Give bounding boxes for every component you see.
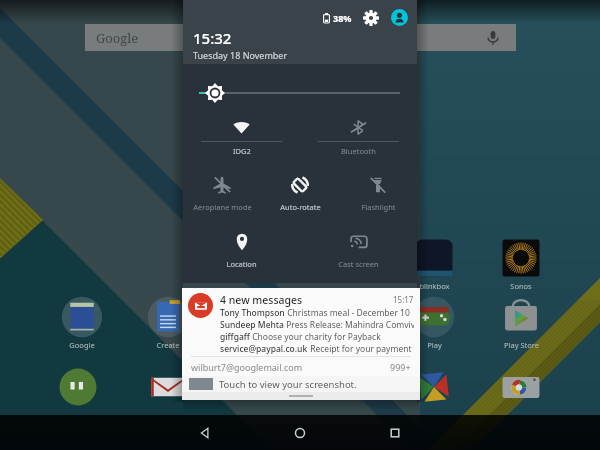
button[interactable] — [48, 366, 108, 408]
staticText: Press Release: Mahindra Comviva … — [284, 319, 414, 331]
button[interactable]: Google — [85, 24, 516, 51]
button[interactable]: Flashlight — [339, 168, 417, 225]
button[interactable]: Google — [52, 296, 112, 350]
staticText: Touch to view your screenshot. — [219, 378, 357, 391]
button[interactable]: Auto-rotate — [261, 168, 339, 225]
staticText: Play Store — [504, 340, 539, 350]
staticText: Christmas meal - December 10 — [285, 307, 410, 319]
staticText: Bluetooth — [341, 146, 376, 156]
button[interactable]: blinkbox — [404, 237, 464, 291]
button[interactable]: Home — [284, 417, 316, 449]
staticText: Receipt for your payment to j… — [308, 343, 414, 355]
staticText: 4 new messages — [220, 293, 303, 307]
staticText: Auto-rotate — [280, 202, 321, 212]
staticText: wilburt7@googlemail.com — [191, 361, 303, 373]
staticText: 15:17 — [393, 294, 414, 305]
staticText: Google — [69, 340, 95, 350]
staticText: Sonos — [510, 281, 532, 291]
staticText: Tony Thompson — [220, 307, 285, 319]
button[interactable]: Aeroplane mode — [183, 168, 261, 225]
button[interactable]: Cast screen — [300, 225, 417, 282]
button[interactable]: Sonos — [491, 237, 551, 291]
staticText: Cast screen — [338, 259, 379, 269]
button[interactable]: 4 new messages — [182, 288, 420, 376]
staticText: giffgaff — [220, 331, 250, 343]
staticText: 38% — [333, 12, 352, 24]
staticText: Play — [427, 340, 442, 350]
button[interactable]: Bluetooth — [300, 111, 417, 168]
staticText: blinkbox — [419, 281, 450, 291]
button[interactable]: Create — [138, 296, 198, 350]
button[interactable]: Touch to view your screenshot. — [182, 376, 420, 392]
button[interactable] — [138, 366, 198, 408]
button[interactable]: Play Store — [491, 296, 551, 350]
button[interactable]: Back — [189, 417, 221, 449]
button[interactable]: Location — [183, 225, 300, 282]
staticText: 999+ — [390, 361, 411, 373]
staticText: Choose your charity for Payback — [250, 331, 381, 343]
button[interactable] — [491, 366, 551, 408]
staticText: Location — [226, 259, 257, 269]
staticText: Create — [156, 340, 180, 350]
staticText: Flashlight — [361, 202, 396, 212]
button[interactable]: Settings — [363, 10, 379, 26]
button[interactable]: Recent apps — [379, 417, 411, 449]
button[interactable]: User profile — [391, 9, 408, 26]
button[interactable] — [404, 366, 464, 408]
staticText: Aeroplane mode — [193, 202, 252, 212]
button[interactable]: Play — [404, 296, 464, 350]
staticText: Google — [96, 29, 139, 47]
staticText: Sundeep Mehta — [220, 319, 284, 331]
staticText: service@paypal.co.uk — [220, 343, 308, 355]
staticText: 15:32 — [193, 28, 232, 48]
staticText: Tuesday 18 November — [193, 49, 288, 61]
button[interactable]: IDG2 — [183, 111, 300, 168]
staticText: IDG2 — [233, 146, 251, 156]
